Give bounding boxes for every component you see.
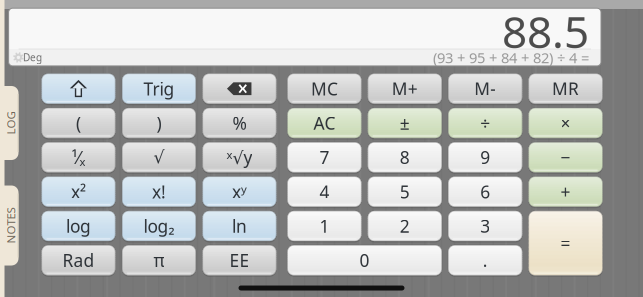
staticText: 88.5 [502, 1, 589, 61]
button[interactable]: 3 [448, 211, 522, 241]
staticText: π [153, 248, 164, 272]
staticText: log₂ [143, 214, 174, 238]
staticText: ± [400, 111, 410, 135]
button[interactable]: = [529, 211, 603, 275]
staticText: % [232, 111, 246, 135]
staticText: Rad [62, 248, 94, 272]
staticText: + [561, 180, 571, 203]
staticText: ( [76, 111, 81, 135]
staticText: 4 [319, 180, 329, 203]
staticText: 5 [400, 180, 410, 203]
button[interactable]: EE [203, 245, 276, 275]
button[interactable]: 7 [287, 142, 361, 172]
button[interactable]: 8 [368, 142, 442, 172]
staticText: xʸ [232, 180, 247, 203]
button[interactable]: 9 [448, 142, 522, 172]
button[interactable]: log [42, 211, 115, 241]
button[interactable]: Rad [42, 245, 115, 275]
button[interactable]: 1 [287, 211, 361, 241]
staticText: = [561, 231, 571, 255]
button[interactable]: 6 [448, 177, 522, 207]
button[interactable]: π [122, 245, 196, 275]
button[interactable]: 0 [287, 245, 442, 275]
staticText: . [483, 248, 488, 272]
button[interactable]: M+ [368, 74, 442, 104]
staticText: ) [156, 111, 161, 135]
button[interactable]: 5 [368, 177, 442, 207]
staticText: 8 [400, 145, 410, 169]
staticText: Trig [143, 77, 174, 100]
staticText: 1 [319, 214, 329, 238]
button[interactable]: ˣ√y [203, 142, 276, 172]
button[interactable]: x² [42, 177, 115, 207]
button[interactable]: log₂ [122, 211, 196, 241]
staticText: √ [153, 147, 164, 167]
staticText: M- [474, 77, 496, 100]
button[interactable]: MC [287, 74, 361, 104]
button[interactable]: ± [368, 108, 442, 138]
staticText: log [66, 214, 91, 238]
staticText: 2 [400, 214, 410, 238]
staticText: − [561, 145, 571, 169]
button[interactable]: − [529, 142, 603, 172]
button[interactable]: 2 [368, 211, 442, 241]
staticText: 0 [360, 248, 370, 272]
button[interactable]: % [203, 108, 276, 138]
staticText: M+ [392, 77, 418, 100]
button[interactable]: . [448, 245, 522, 275]
staticText: ÷ [480, 111, 490, 135]
staticText: × [561, 111, 571, 135]
button[interactable]: √ [122, 142, 196, 172]
button[interactable]: Delete [203, 74, 276, 104]
button[interactable]: ( [42, 108, 115, 138]
staticText: MC [311, 77, 338, 100]
staticText: ˣ√y [226, 145, 252, 169]
button[interactable]: xʸ [203, 177, 276, 207]
staticText: x! [152, 180, 166, 203]
button[interactable]: x! [122, 177, 196, 207]
button[interactable]: + [529, 177, 603, 207]
staticText: ¹⁄ₓ [71, 145, 85, 169]
staticText: 6 [480, 180, 490, 203]
button[interactable]: × [529, 108, 603, 138]
staticText: ln [232, 214, 247, 238]
staticText: (93 + 95 + 84 + 82) ÷ 4 = [433, 47, 589, 67]
staticText: Deg [23, 51, 42, 64]
button[interactable]: M- [448, 74, 522, 104]
staticText: x² [71, 180, 86, 203]
staticText: EE [229, 248, 249, 272]
button[interactable]: LOG [0, 86, 18, 160]
button[interactable]: AC [287, 108, 361, 138]
staticText: NOTES [0, 218, 29, 233]
button[interactable]: NOTES [0, 185, 18, 265]
button[interactable]: ¹⁄ₓ [42, 142, 115, 172]
button[interactable]: ln [203, 211, 276, 241]
button[interactable]: 4 [287, 177, 361, 207]
button[interactable]: Shift [42, 74, 115, 104]
staticText: 9 [480, 145, 490, 169]
button[interactable]: ) [122, 108, 196, 138]
button[interactable]: MR [529, 74, 603, 104]
button[interactable]: Trig [122, 74, 196, 104]
staticText: AC [313, 111, 335, 135]
staticText: MR [552, 77, 579, 100]
staticText: 3 [480, 214, 490, 238]
button[interactable]: ÷ [448, 108, 522, 138]
staticText: LOG [0, 115, 22, 131]
staticText: 7 [319, 145, 329, 169]
